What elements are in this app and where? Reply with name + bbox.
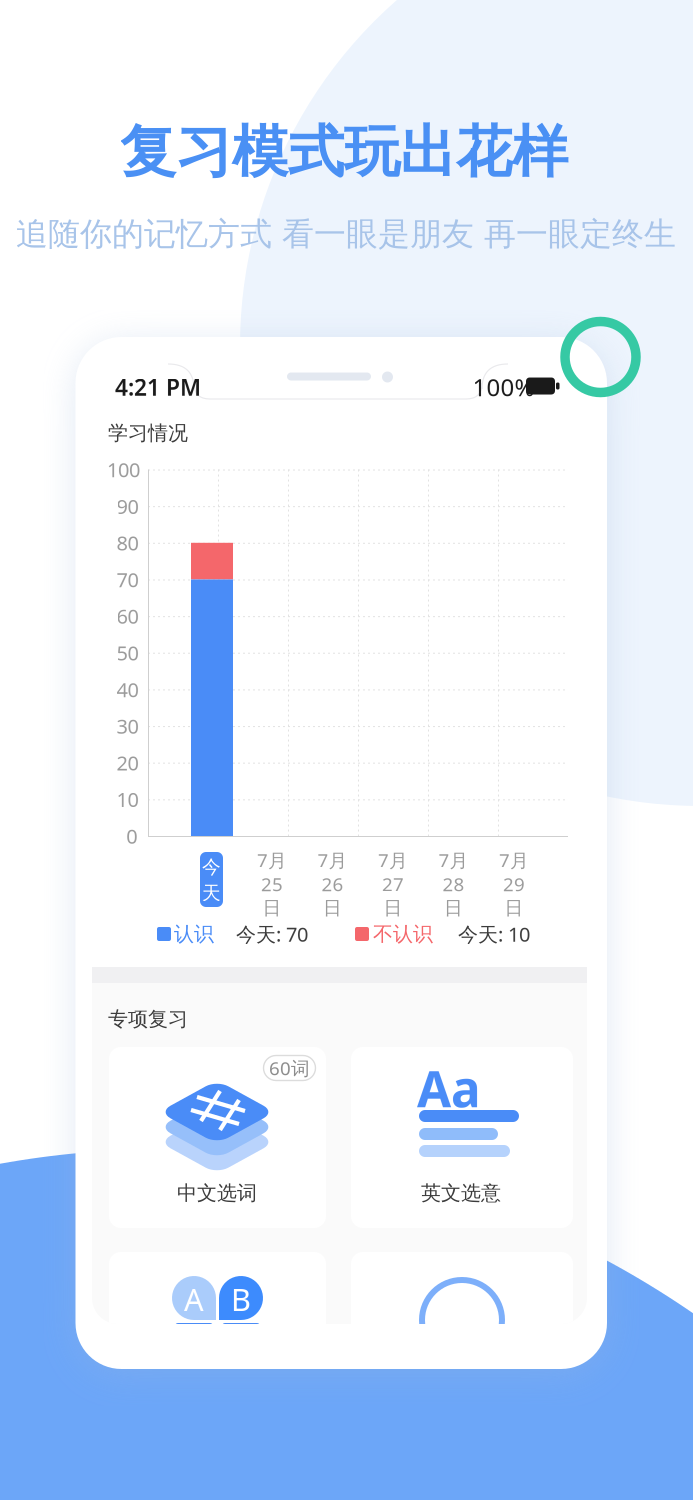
staticText: 26 bbox=[321, 872, 343, 896]
staticText: 日 bbox=[444, 896, 463, 919]
staticText: 复习模式玩出花样 bbox=[120, 118, 568, 186]
staticText: 英文选意 bbox=[421, 1181, 501, 1205]
staticText: 7月 bbox=[438, 848, 468, 872]
staticText: 0 bbox=[126, 823, 137, 849]
staticText: 40 bbox=[117, 676, 139, 703]
staticText: 100% bbox=[472, 371, 534, 403]
staticText: 7月 bbox=[378, 848, 408, 872]
staticText: 日 bbox=[262, 896, 281, 919]
staticText: 4:21 PM bbox=[115, 372, 201, 402]
staticText: 中文选词 bbox=[177, 1181, 257, 1205]
button[interactable] bbox=[0, 0, 693, 1500]
staticText: 80 bbox=[117, 529, 139, 556]
button[interactable]: A bbox=[0, 0, 693, 1500]
staticText: 60 bbox=[117, 603, 139, 629]
staticText: 天 bbox=[202, 881, 221, 904]
staticText: 追随你的记忆方式 看一眼是朋友 再一眼定终生 bbox=[16, 214, 676, 254]
staticText: 今天: 70 bbox=[236, 921, 308, 947]
staticText: 70 bbox=[117, 566, 139, 593]
staticText: 10 bbox=[117, 786, 139, 813]
staticText: 7月 bbox=[317, 848, 347, 872]
staticText: Aa bbox=[417, 1055, 481, 1121]
button[interactable]: Aa bbox=[0, 0, 693, 1500]
staticText: 专项复习 bbox=[108, 1007, 188, 1031]
staticText: 50 bbox=[117, 639, 139, 666]
staticText: 日 bbox=[323, 896, 342, 919]
staticText: 认识 bbox=[174, 922, 214, 946]
staticText: B bbox=[231, 1279, 251, 1319]
staticText: 不认识 bbox=[373, 922, 433, 946]
staticText: 28 bbox=[442, 872, 464, 896]
staticText: 30 bbox=[117, 713, 139, 739]
staticText: 27 bbox=[382, 872, 404, 896]
staticText: 7月 bbox=[257, 848, 287, 872]
staticText: 专项复习 bbox=[108, 1007, 188, 1031]
staticText: 今 bbox=[202, 855, 221, 878]
staticText: 7月 bbox=[499, 848, 529, 872]
staticText: 60词 bbox=[269, 1056, 310, 1080]
staticText: 90 bbox=[117, 493, 139, 519]
staticText: 20 bbox=[117, 749, 139, 776]
staticText: 100 bbox=[107, 456, 140, 483]
button[interactable]: 60词 bbox=[0, 0, 693, 1500]
staticText: 日 bbox=[504, 896, 523, 919]
staticText: 今天: 10 bbox=[458, 921, 530, 947]
staticText: 日 bbox=[383, 896, 402, 919]
staticText: 25 bbox=[261, 872, 283, 896]
staticText: A bbox=[184, 1279, 204, 1319]
staticText: 学习情况 bbox=[108, 421, 188, 445]
staticText: 29 bbox=[503, 872, 525, 896]
